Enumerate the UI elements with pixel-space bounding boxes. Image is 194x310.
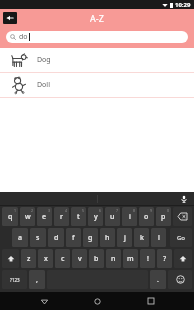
staticText: d xyxy=(54,233,59,243)
staticText: ! xyxy=(147,254,149,264)
staticText: . xyxy=(157,275,159,285)
button[interactable]: a xyxy=(12,228,28,247)
staticText: h xyxy=(105,233,110,243)
staticText: c xyxy=(61,254,65,264)
button[interactable]: s xyxy=(30,228,46,247)
button[interactable]: c xyxy=(55,249,70,268)
staticText: l xyxy=(158,233,160,243)
button[interactable]: ? xyxy=(157,249,172,268)
button[interactable]: d xyxy=(48,228,64,247)
staticText: 5 xyxy=(82,208,85,213)
button[interactable]: f xyxy=(66,228,81,247)
staticText: v xyxy=(78,254,82,264)
button[interactable]: Go xyxy=(170,228,192,247)
button[interactable]: m xyxy=(123,249,138,268)
staticText: o xyxy=(144,212,149,222)
button[interactable]: n xyxy=(106,249,121,268)
button[interactable]: Doll xyxy=(0,73,194,97)
staticText: 6 xyxy=(99,208,102,213)
staticText: Dog xyxy=(37,55,51,65)
staticText: m xyxy=(127,254,134,264)
button[interactable]: x xyxy=(38,249,53,268)
staticText: , xyxy=(36,275,38,285)
button[interactable]: t xyxy=(71,207,86,226)
button[interactable]: r xyxy=(54,207,69,226)
staticText: 10:29 xyxy=(175,1,191,9)
button[interactable]: z xyxy=(21,249,36,268)
staticText: z xyxy=(27,254,31,264)
staticText: j xyxy=(124,233,126,243)
button[interactable]: o xyxy=(139,207,154,226)
staticText: Doll xyxy=(37,80,50,90)
button[interactable]: Back xyxy=(3,12,17,24)
staticText: g xyxy=(88,233,93,243)
button[interactable]: Symbols xyxy=(2,270,27,289)
staticText: y xyxy=(94,212,98,222)
staticText: ?123 xyxy=(10,277,20,283)
staticText: 9 xyxy=(150,208,153,213)
button[interactable]: w xyxy=(20,207,35,226)
button[interactable]: Shift xyxy=(174,249,192,268)
staticText: b xyxy=(94,254,99,264)
staticText: s xyxy=(36,233,40,243)
button[interactable]: Shift xyxy=(2,249,19,268)
staticText: r xyxy=(60,212,63,222)
button[interactable]: q xyxy=(2,207,18,226)
button[interactable]: ! xyxy=(140,249,155,268)
staticText: 3 xyxy=(48,208,51,213)
button[interactable]: y xyxy=(88,207,103,226)
button[interactable]: i xyxy=(122,207,137,226)
button[interactable]: u xyxy=(105,207,120,226)
staticText: n xyxy=(111,254,116,264)
staticText: ? xyxy=(163,254,167,264)
button[interactable]: Voice input xyxy=(178,193,189,204)
button[interactable]: k xyxy=(134,228,149,247)
staticText: u xyxy=(110,212,115,222)
button[interactable]: . xyxy=(150,270,166,289)
button[interactable]: , xyxy=(29,270,45,289)
button[interactable]: Recents xyxy=(141,292,161,310)
button[interactable]: Home xyxy=(87,292,107,310)
staticText: t xyxy=(77,212,80,222)
staticText: Go xyxy=(177,234,185,242)
button[interactable]: v xyxy=(72,249,87,268)
staticText: 4 xyxy=(65,208,68,213)
staticText: w xyxy=(25,212,31,222)
button[interactable]: do xyxy=(6,31,188,43)
button[interactable]: Emoji xyxy=(168,270,192,289)
button[interactable]: Backspace xyxy=(173,207,192,226)
staticText: x xyxy=(44,254,48,264)
button[interactable]: l xyxy=(151,228,166,247)
staticText: do xyxy=(19,32,28,42)
staticText: a xyxy=(18,233,23,243)
staticText: 8 xyxy=(133,208,136,213)
staticText: e xyxy=(42,212,47,222)
button[interactable]: h xyxy=(100,228,115,247)
staticText: f xyxy=(72,233,75,243)
staticText: q xyxy=(8,212,13,222)
staticText: k xyxy=(140,233,144,243)
button[interactable]: b xyxy=(89,249,104,268)
button[interactable]: j xyxy=(117,228,132,247)
button[interactable]: Back xyxy=(34,292,54,310)
button[interactable]: g xyxy=(83,228,98,247)
button[interactable]: e xyxy=(37,207,52,226)
staticText: 2 xyxy=(31,208,34,213)
staticText: A-Z xyxy=(90,12,104,24)
staticText: i xyxy=(129,212,131,222)
button[interactable]: Dog xyxy=(0,48,194,72)
staticText: p xyxy=(161,212,166,222)
staticText: 7 xyxy=(116,208,119,213)
button[interactable]: p xyxy=(156,207,171,226)
staticText: 1 xyxy=(14,208,17,213)
staticText: 0 xyxy=(167,208,170,213)
